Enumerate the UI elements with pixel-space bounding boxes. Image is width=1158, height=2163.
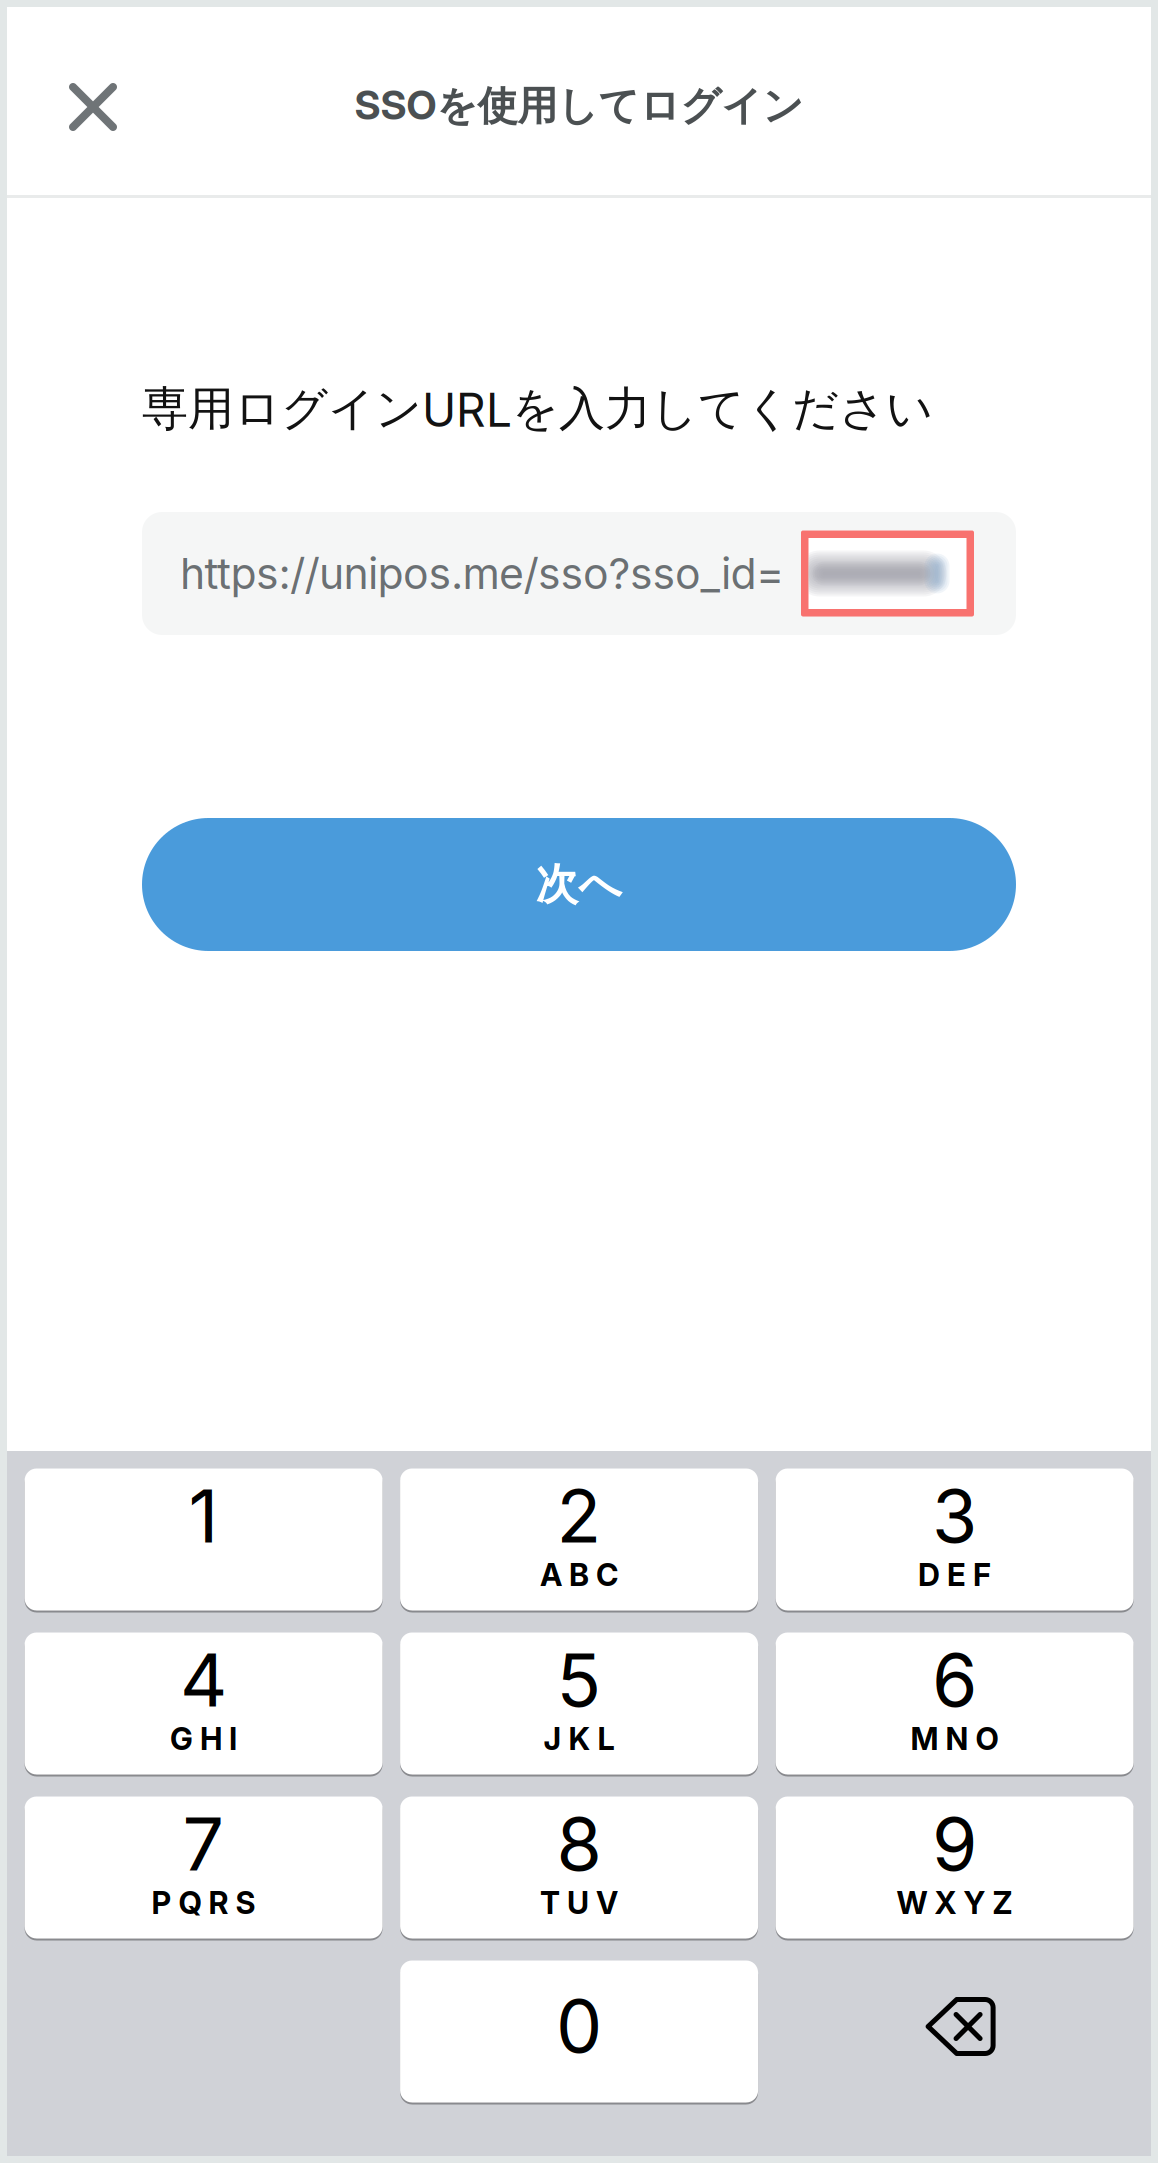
staticText: ABC [540,1556,618,1593]
staticText: GHI [170,1720,237,1757]
staticText: 5 [557,1635,602,1724]
staticText: 9 [932,1799,977,1888]
button[interactable]: Close [38,52,148,162]
staticText: 1 [189,1471,219,1560]
button[interactable]: 2 [400,1468,758,1610]
staticText: 専用ログインURLを入力してください [142,380,933,438]
staticText: PQRS [152,1884,256,1921]
button[interactable]: 8 [400,1796,758,1938]
button[interactable]: Delete [776,1960,1134,2102]
staticText: 0 [556,1981,602,2070]
button[interactable]: 次へ [142,818,1016,951]
staticText: https://unipos.me/sso?sso_id= [180,548,784,599]
button[interactable]: 1 [25,1468,383,1610]
staticText: 4 [180,1635,227,1724]
button[interactable]: 0 [400,1960,758,2102]
button[interactable]: 6 [776,1632,1134,1774]
staticText: JKL [544,1720,615,1757]
button[interactable]: 7 [25,1796,383,1938]
staticText: SSOを使用してログイン [354,81,803,131]
button[interactable]: 5 [400,1632,758,1774]
staticText: 2 [557,1471,602,1560]
staticText: DEF [918,1556,991,1593]
button[interactable]: 4 [25,1632,383,1774]
staticText: 8 [557,1799,602,1888]
button[interactable]: 3 [776,1468,1134,1610]
staticText: 3 [932,1471,977,1560]
staticText: TUV [540,1884,618,1921]
staticText: 6 [932,1635,977,1724]
staticText: WXYZ [897,1884,1013,1921]
button[interactable]: 9 [776,1796,1134,1938]
staticText: 7 [183,1799,225,1888]
staticText: MNO [911,1720,999,1757]
staticText: 次へ [535,858,622,911]
